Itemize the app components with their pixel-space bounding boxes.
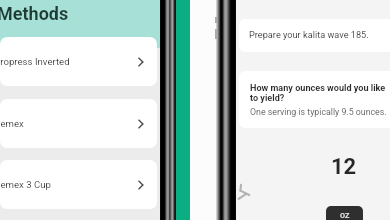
staticText: Chemex bbox=[0, 118, 24, 129]
staticText: One serving is typically 9.5 ounces. bbox=[250, 107, 387, 117]
staticText: OZ bbox=[340, 211, 350, 220]
other: Open Aeropress Inverted bbox=[138, 57, 144, 67]
button[interactable]: Chemex bbox=[0, 99, 157, 148]
staticText: How many ounces would you like bbox=[250, 83, 386, 94]
button[interactable]: How many ounces would you like bbox=[239, 71, 390, 128]
button[interactable]: OZ bbox=[326, 206, 363, 220]
staticText: Prepare your kalita wave 185. bbox=[249, 29, 369, 40]
other: Open Chemex 3 Cup bbox=[138, 180, 144, 190]
staticText: Methods bbox=[0, 3, 69, 24]
other: Back bbox=[236, 182, 256, 202]
button[interactable]: Prepare your kalita wave 185. bbox=[239, 19, 390, 52]
other: Open Chemex bbox=[138, 119, 144, 129]
staticText: to yield? bbox=[250, 93, 285, 104]
button[interactable]: Aeropress Inverted bbox=[0, 37, 157, 86]
staticText: Aeropress Inverted bbox=[0, 56, 70, 67]
button[interactable]: Chemex 3 Cup bbox=[0, 160, 157, 209]
staticText: 12 bbox=[331, 154, 357, 180]
staticText: Chemex 3 Cup bbox=[0, 179, 51, 190]
